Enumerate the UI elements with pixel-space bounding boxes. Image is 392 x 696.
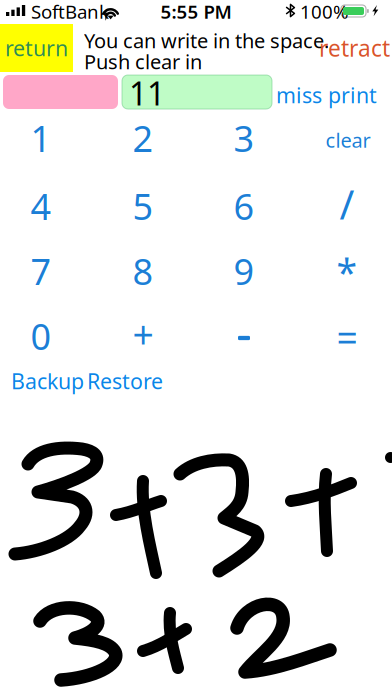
staticText: 3 bbox=[233, 114, 254, 162]
button[interactable]: 5 bbox=[94, 175, 192, 237]
button[interactable]: 3 bbox=[195, 107, 293, 169]
staticText: 9 bbox=[233, 247, 254, 295]
staticText: You can write in the space. bbox=[84, 27, 329, 54]
staticText: clear bbox=[325, 127, 370, 153]
button[interactable]: 7 bbox=[0, 240, 90, 302]
button[interactable]: 9 bbox=[195, 240, 293, 302]
button[interactable]: 8 bbox=[94, 240, 192, 302]
staticText: return bbox=[5, 34, 68, 62]
staticText: 5 bbox=[132, 182, 153, 230]
staticText: / bbox=[339, 177, 354, 230]
staticText: 100% bbox=[300, 0, 349, 24]
staticText: SoftBank bbox=[31, 0, 109, 24]
button[interactable]: / bbox=[298, 173, 392, 235]
button[interactable]: Restore bbox=[87, 367, 157, 395]
staticText: + bbox=[132, 309, 153, 359]
button[interactable]: retract bbox=[318, 34, 390, 62]
staticText: 6 bbox=[233, 182, 254, 230]
button[interactable]: 6 bbox=[195, 175, 293, 237]
staticText: = bbox=[336, 312, 357, 362]
staticText: 4 bbox=[30, 182, 51, 230]
staticText: Push clear in bbox=[84, 48, 202, 75]
button[interactable]: minus bbox=[195, 307, 293, 369]
staticText: Restore bbox=[87, 367, 163, 395]
button[interactable]: Backup bbox=[11, 367, 77, 395]
button[interactable]: return bbox=[0, 24, 73, 72]
button[interactable]: + bbox=[94, 303, 192, 365]
staticText: 0 bbox=[30, 312, 51, 360]
staticText: 7 bbox=[30, 247, 51, 295]
staticText: retract bbox=[319, 33, 390, 63]
staticText: 8 bbox=[132, 247, 153, 295]
button[interactable]: = bbox=[298, 306, 392, 368]
staticText: 11 bbox=[129, 72, 165, 114]
staticText: 2 bbox=[132, 114, 153, 162]
staticText: Backup bbox=[11, 367, 84, 395]
staticText: miss print bbox=[276, 81, 377, 109]
button[interactable]: 4 bbox=[0, 175, 90, 237]
button[interactable]: * bbox=[298, 241, 392, 303]
staticText: 5:55 PM bbox=[160, 0, 231, 24]
staticText: 1 bbox=[30, 114, 51, 162]
button[interactable]: clear bbox=[299, 109, 392, 171]
button[interactable]: miss print bbox=[285, 82, 377, 108]
button[interactable]: 2 bbox=[94, 107, 192, 169]
staticText: * bbox=[336, 247, 357, 297]
button[interactable]: 1 bbox=[0, 107, 90, 169]
button[interactable]: 0 bbox=[0, 305, 90, 367]
